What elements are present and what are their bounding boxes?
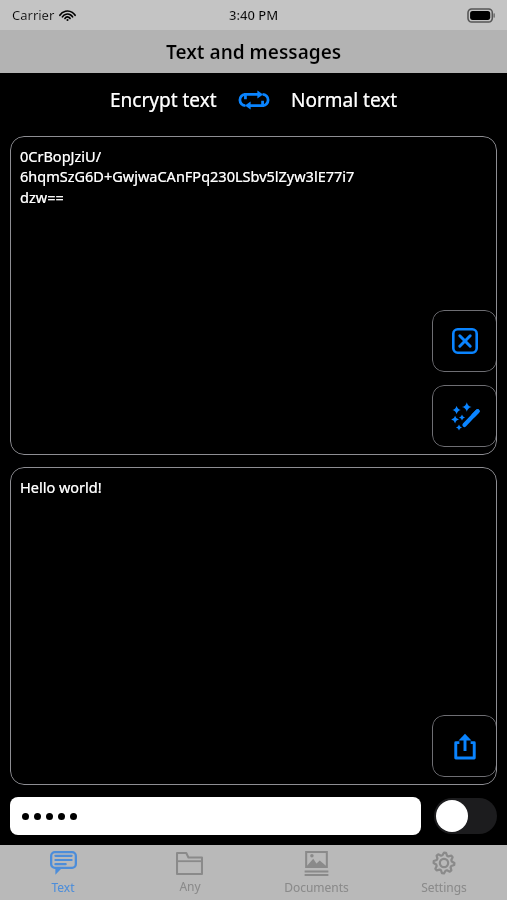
staticText: Carrier	[12, 6, 55, 24]
button[interactable]: Share	[432, 715, 497, 777]
button[interactable]: Hello world!	[10, 467, 497, 785]
button[interactable]: Clear text	[432, 310, 497, 372]
button[interactable]: 0CrBopJziU/ 6hqmSzG6D+GwjwaCAnFPq230LSbv…	[10, 136, 497, 455]
button[interactable]: Text	[0, 845, 126, 900]
button[interactable]: Swap mode	[237, 83, 271, 117]
button[interactable]: Any	[126, 845, 253, 900]
staticText: Text	[51, 879, 75, 895]
staticText: Text and messages	[166, 39, 342, 65]
staticText: 0CrBopJziU/ 6hqmSzG6D+GwjwaCAnFPq230LSbv…	[20, 146, 355, 208]
button[interactable]: Normal text	[285, 87, 404, 113]
button[interactable]: Toggle password visibility	[434, 798, 497, 834]
staticText: Hello world!	[20, 477, 102, 497]
staticText: 3:40 PM	[229, 6, 279, 24]
staticText: Documents	[284, 879, 349, 895]
button[interactable]: Encrypt text	[104, 87, 223, 113]
button[interactable]: Generate	[432, 385, 497, 447]
button[interactable]: Settings	[380, 845, 507, 900]
button[interactable]: Documents	[253, 845, 380, 900]
staticText: Settings	[421, 879, 467, 895]
button[interactable]	[10, 797, 421, 835]
staticText: Any	[179, 878, 201, 894]
